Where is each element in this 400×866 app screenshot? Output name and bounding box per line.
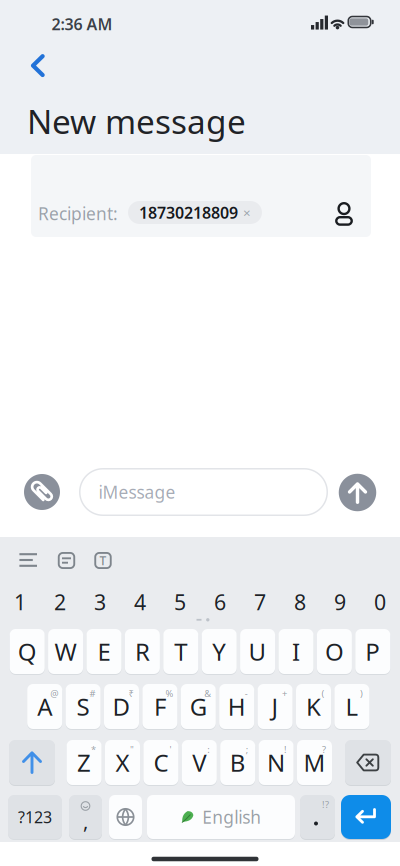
- staticText: #: [90, 687, 96, 700]
- button[interactable]: K: [296, 684, 331, 729]
- button[interactable]: P: [355, 629, 390, 674]
- staticText: &: [204, 687, 211, 700]
- staticText: 7: [254, 588, 266, 616]
- staticText: K: [306, 691, 321, 722]
- button[interactable]: B: [220, 740, 255, 785]
- button[interactable]: J: [258, 684, 293, 729]
- button[interactable]: Comma: [69, 795, 102, 839]
- staticText: X: [115, 747, 129, 778]
- staticText: 0: [374, 588, 386, 616]
- staticText: :: [207, 743, 210, 756]
- button[interactable]: 9: [320, 581, 360, 623]
- button[interactable]: 18730218809: [128, 201, 262, 224]
- button[interactable]: Z: [67, 740, 102, 785]
- staticText: %: [165, 687, 173, 700]
- staticText: !?: [322, 798, 329, 811]
- staticText: P: [365, 636, 380, 667]
- button[interactable]: Notes: [49, 543, 83, 577]
- button[interactable]: ?123: [8, 795, 62, 839]
- staticText: New message: [27, 99, 246, 143]
- button[interactable]: E: [86, 629, 121, 674]
- button[interactable]: Shift: [9, 740, 55, 785]
- button[interactable]: Switch keyboard: [109, 795, 142, 839]
- button[interactable]: L: [334, 684, 369, 729]
- button[interactable]: F: [142, 684, 177, 729]
- button[interactable]: O: [317, 629, 352, 674]
- staticText: N: [267, 747, 285, 778]
- staticText: Z: [77, 747, 91, 778]
- staticText: L: [345, 691, 358, 722]
- button[interactable]: Return: [341, 795, 391, 839]
- button[interactable]: V: [182, 740, 217, 785]
- staticText: T: [99, 552, 106, 568]
- staticText: T: [174, 636, 187, 667]
- button[interactable]: N: [259, 740, 294, 785]
- staticText: R: [135, 636, 150, 667]
- button[interactable]: 7: [240, 581, 280, 623]
- staticText: -: [245, 687, 248, 700]
- button[interactable]: 0: [360, 581, 400, 623]
- button[interactable]: 8: [280, 581, 320, 623]
- staticText: 9: [334, 588, 346, 616]
- button[interactable]: 3: [80, 581, 120, 623]
- button[interactable]: Choose contact: [322, 192, 366, 236]
- staticText: @: [50, 687, 58, 700]
- button[interactable]: 4: [120, 581, 160, 623]
- button[interactable]: H: [219, 684, 254, 729]
- staticText: Recipient:: [38, 202, 118, 225]
- button[interactable]: 5: [160, 581, 200, 623]
- button[interactable]: A: [27, 684, 62, 729]
- staticText: 1: [14, 588, 26, 616]
- button[interactable]: Text editor: [86, 543, 120, 577]
- button[interactable]: 2: [40, 581, 80, 623]
- staticText: ": [130, 743, 134, 756]
- staticText: A: [37, 691, 52, 722]
- staticText: ×: [243, 204, 251, 221]
- button[interactable]: I: [278, 629, 313, 674]
- staticText: 18730218809: [139, 202, 238, 223]
- staticText: 6: [214, 588, 226, 616]
- button[interactable]: Q: [10, 629, 45, 674]
- staticText: ;: [246, 743, 249, 756]
- button[interactable]: T: [163, 629, 198, 674]
- button[interactable]: Back: [16, 45, 60, 89]
- staticText: +: [282, 687, 287, 700]
- button[interactable]: X: [105, 740, 140, 785]
- button[interactable]: Period: [300, 795, 335, 839]
- button[interactable]: iMessage text field: [79, 468, 328, 516]
- staticText: *: [91, 743, 96, 756]
- staticText: 8: [294, 588, 306, 616]
- staticText: V: [192, 747, 206, 778]
- button[interactable]: Backspace: [345, 740, 391, 785]
- button[interactable]: 6: [200, 581, 240, 623]
- button[interactable]: W: [48, 629, 83, 674]
- staticText: W: [55, 636, 77, 667]
- staticText: Y: [212, 636, 226, 667]
- button[interactable]: M: [297, 740, 332, 785]
- staticText: 4: [134, 588, 146, 616]
- staticText: English: [202, 805, 261, 828]
- button[interactable]: Clipboard: [11, 543, 45, 577]
- button[interactable]: Space: [147, 795, 295, 839]
- staticText: B: [230, 747, 246, 778]
- staticText: S: [77, 691, 90, 722]
- staticText: O: [325, 636, 344, 667]
- button[interactable]: D: [104, 684, 139, 729]
- staticText: !: [284, 743, 287, 756]
- button[interactable]: 1: [0, 581, 40, 623]
- staticText: D: [112, 691, 130, 722]
- button[interactable]: Attach: [24, 474, 60, 510]
- staticText: E: [97, 636, 110, 667]
- staticText: ?: [322, 743, 326, 756]
- staticText: H: [228, 691, 246, 722]
- button[interactable]: R: [125, 629, 160, 674]
- staticText: J: [272, 691, 279, 722]
- button[interactable]: Y: [202, 629, 237, 674]
- button[interactable]: G: [181, 684, 216, 729]
- button[interactable]: S: [66, 684, 101, 729]
- button[interactable]: U: [240, 629, 275, 674]
- button[interactable]: Send: [339, 474, 376, 511]
- staticText: ₹: [128, 687, 133, 700]
- staticText: ': [169, 743, 171, 756]
- button[interactable]: C: [143, 740, 178, 785]
